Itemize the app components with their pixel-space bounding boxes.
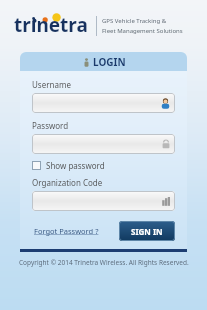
other: Username — [160, 98, 171, 109]
button[interactable]: Password — [32, 134, 175, 154]
other: Organization Code — [161, 196, 171, 206]
button[interactable]: Show password — [32, 160, 105, 171]
button[interactable]: Forgot Password ? — [32, 224, 101, 238]
staticText: Username — [32, 79, 71, 90]
staticText: SIGN IN — [131, 226, 163, 237]
staticText: Password — [32, 120, 69, 131]
staticText: LOGIN — [93, 55, 126, 69]
staticText: Fleet Management Solutions — [102, 27, 183, 35]
button[interactable]: Organization Code — [32, 191, 175, 211]
other: Password — [161, 139, 171, 149]
staticText: trinetra — [14, 12, 88, 38]
button[interactable]: Username — [32, 93, 175, 113]
staticText: Show password — [46, 160, 105, 171]
staticText: Organization Code — [32, 177, 103, 188]
other: User — [82, 58, 91, 67]
staticText: Forgot Password ? — [34, 226, 99, 236]
staticText: GPS Vehicle Tracking & — [102, 17, 167, 25]
staticText: Copyright © 2014 Trinetra Wireless. All … — [19, 258, 189, 267]
button[interactable]: SIGN IN — [119, 221, 175, 241]
